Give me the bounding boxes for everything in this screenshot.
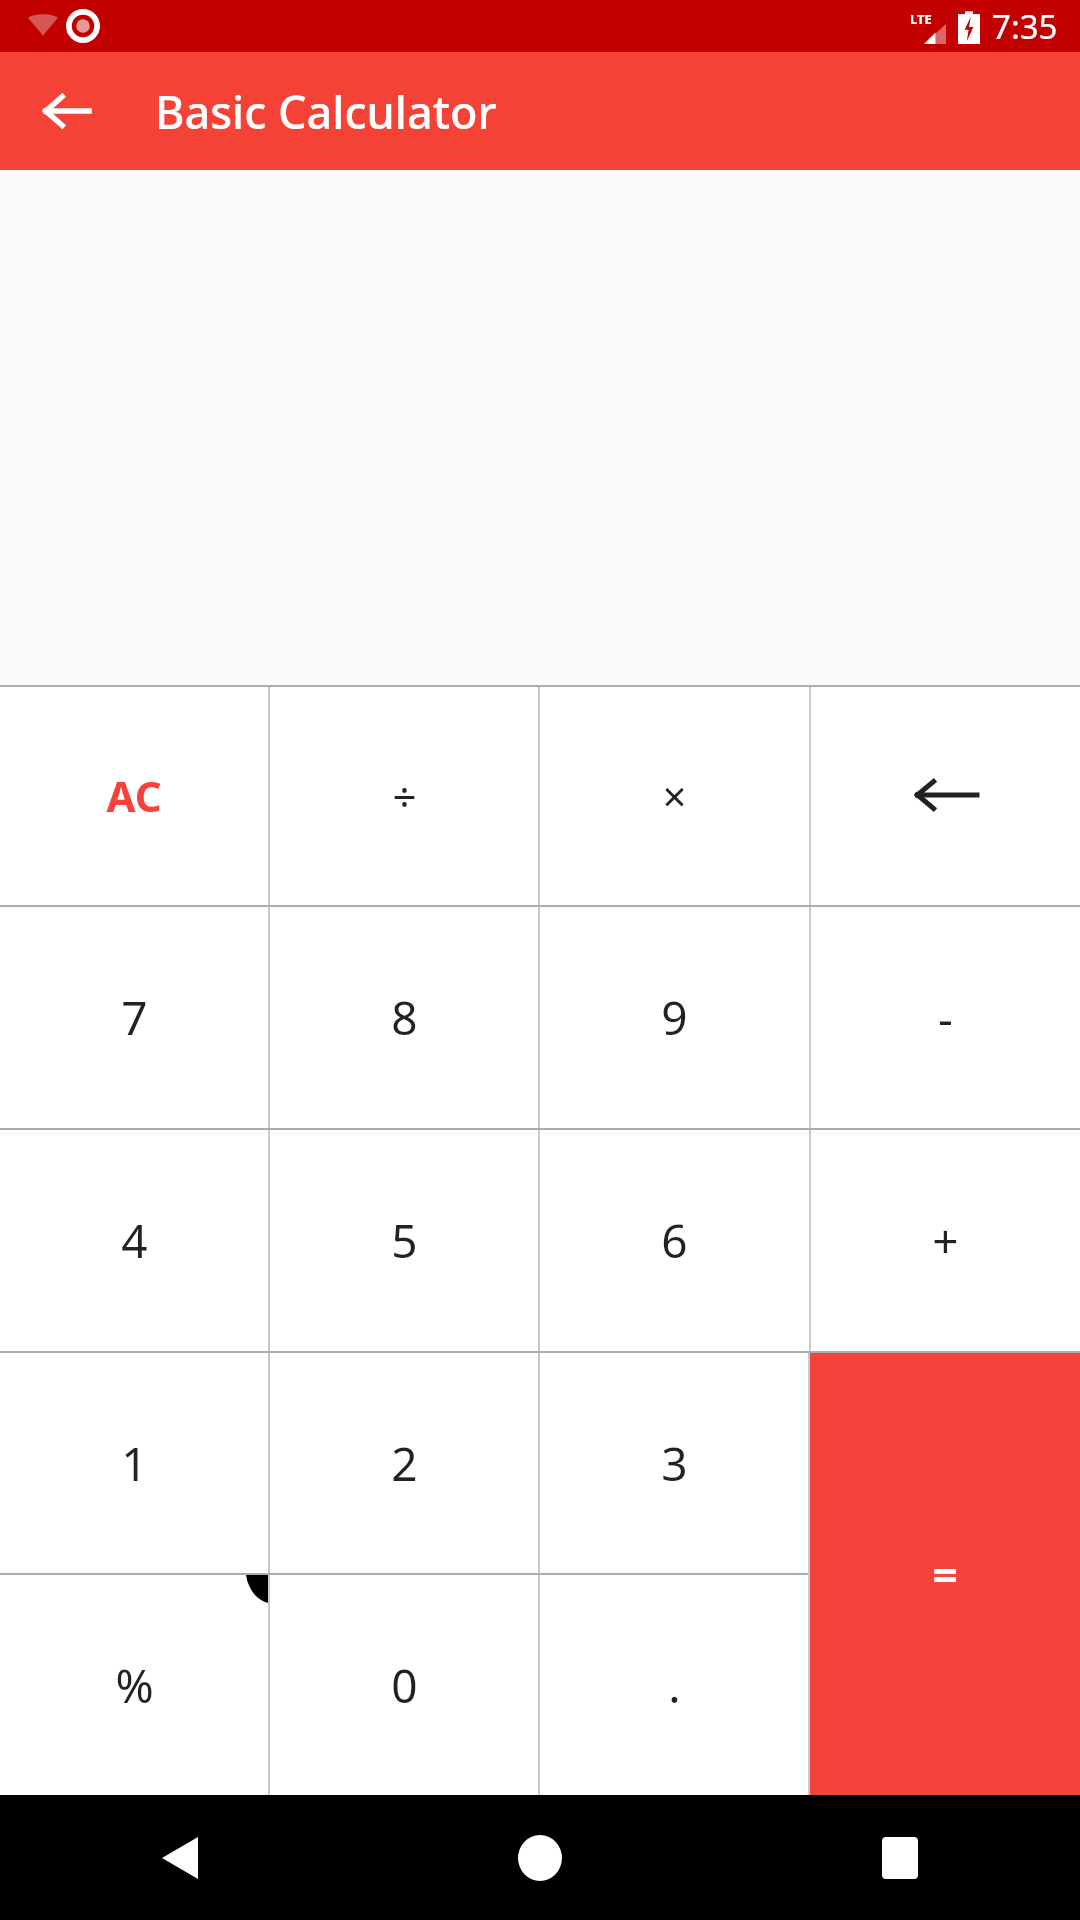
staticText: % — [115, 1654, 154, 1717]
button[interactable]: 6 — [540, 1130, 809, 1351]
button[interactable]: - — [811, 907, 1080, 1128]
button[interactable]: 9 — [540, 907, 809, 1128]
staticText: 3 — [661, 1432, 688, 1495]
staticText: 5 — [391, 1209, 418, 1272]
button[interactable]: × — [540, 685, 809, 905]
staticText: 2 — [391, 1432, 418, 1495]
staticText: 0 — [391, 1654, 418, 1717]
button[interactable]: 5 — [270, 1130, 538, 1351]
button[interactable]: + — [811, 1130, 1080, 1351]
button[interactable]: Recent apps — [720, 1795, 1080, 1920]
staticText: 4 — [121, 1209, 148, 1272]
staticText: × — [662, 767, 687, 824]
staticText: + — [932, 1209, 959, 1272]
staticText: 9 — [661, 986, 688, 1049]
button[interactable]: 4 — [0, 1130, 268, 1351]
button[interactable]: Home — [360, 1795, 720, 1920]
button[interactable]: 0 — [270, 1575, 538, 1795]
button[interactable]: 3 — [540, 1353, 808, 1573]
staticText: AC — [106, 767, 162, 824]
button[interactable]: Back — [0, 1795, 360, 1920]
button[interactable]: 7 — [0, 907, 268, 1128]
button[interactable]: = — [810, 1353, 1080, 1795]
staticText: 7 — [121, 986, 148, 1049]
staticText: - — [938, 986, 953, 1049]
button[interactable]: 2 — [270, 1353, 538, 1573]
staticText: LTE — [910, 10, 932, 28]
button[interactable]: 8 — [270, 907, 538, 1128]
button[interactable]: ÷ — [270, 685, 538, 905]
staticText: 8 — [391, 986, 418, 1049]
staticText: . — [668, 1654, 681, 1717]
button[interactable]: Back — [24, 68, 110, 154]
staticText: = — [932, 1544, 958, 1604]
button[interactable]: 1 — [0, 1353, 268, 1573]
staticText: Basic Calculator — [155, 81, 497, 142]
button[interactable]: % — [0, 1575, 268, 1795]
staticText: 1 — [121, 1432, 148, 1495]
button[interactable]: Backspace — [811, 685, 1080, 905]
staticText: 6 — [661, 1209, 688, 1272]
button[interactable]: AC — [0, 685, 268, 905]
button[interactable]: . — [540, 1575, 808, 1795]
staticText: ÷ — [392, 767, 417, 824]
staticText: 7:35 — [992, 4, 1058, 49]
